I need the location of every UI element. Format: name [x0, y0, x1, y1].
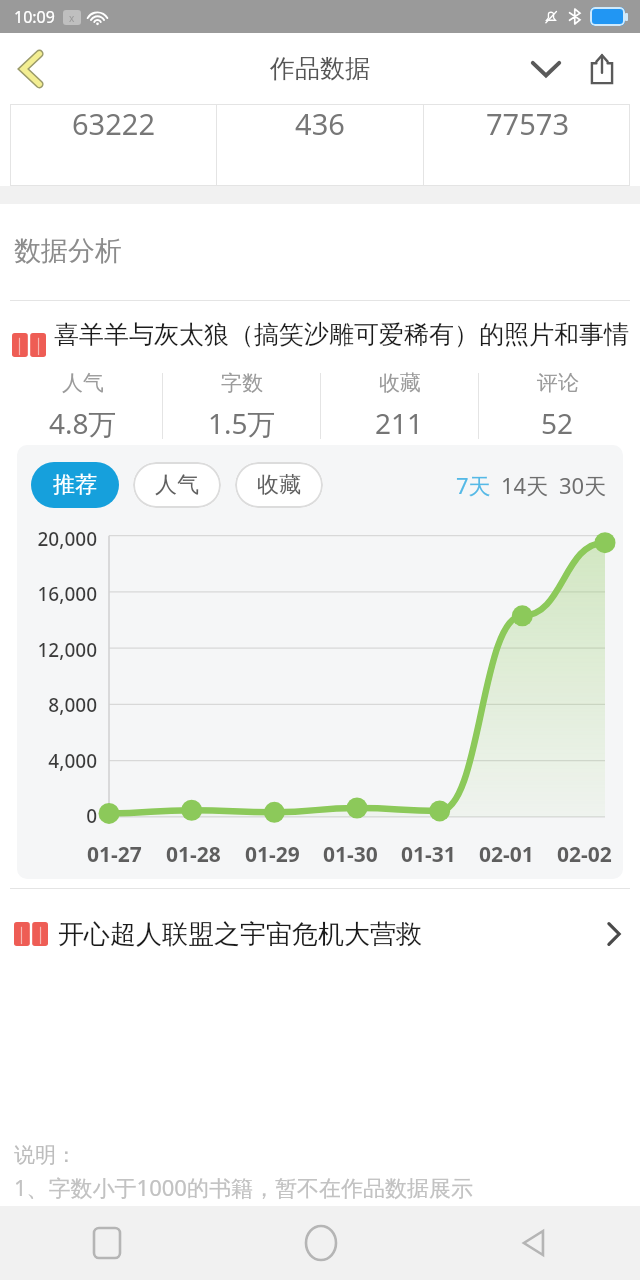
staticText: 436 — [295, 104, 345, 143]
button[interactable]: 63222 — [10, 104, 216, 186]
button[interactable]: Back — [0, 38, 62, 100]
staticText: 数据分析 — [14, 234, 122, 268]
staticText: 01-31 — [401, 840, 456, 869]
staticText: 8,000 — [48, 692, 97, 718]
staticText: 01-28 — [166, 840, 221, 869]
staticText: 63222 — [72, 104, 155, 143]
staticText: 推荐 — [53, 471, 97, 499]
button[interactable]: Home — [214, 1206, 427, 1280]
staticText: x — [69, 11, 75, 25]
staticText: 人气 — [62, 370, 104, 396]
button[interactable]: 77573 — [424, 104, 630, 186]
staticText: 4.8万 — [49, 404, 117, 442]
button[interactable]: 14天 — [499, 464, 551, 506]
staticText: 7天 — [456, 470, 491, 500]
staticText: 说明： — [14, 1142, 77, 1168]
staticText: 02-02 — [557, 840, 612, 869]
staticText: 14天 — [501, 470, 549, 500]
staticText: 01-29 — [245, 840, 300, 869]
staticText: 评论 — [537, 370, 579, 396]
staticText: 4,000 — [48, 748, 97, 774]
staticText: 作品数据 — [270, 53, 370, 84]
button[interactable]: 字数 — [163, 367, 320, 445]
button[interactable]: Share — [574, 41, 630, 97]
button[interactable]: 436 — [217, 104, 423, 186]
staticText: 211 — [375, 404, 424, 442]
staticText: 01-27 — [87, 840, 142, 869]
button[interactable]: 喜羊羊与灰太狼（搞笑沙雕可爱稀有）的照片和事情 — [0, 301, 640, 357]
staticText: 1、字数小于1000的书籍，暂不在作品数据展示 — [14, 1172, 473, 1202]
button[interactable]: 收藏 — [321, 367, 478, 445]
button[interactable]: 人气 — [133, 462, 221, 508]
staticText: 77573 — [486, 104, 569, 143]
staticText: 喜羊羊与灰太狼（搞笑沙雕可爱稀有）的照片和事情 — [54, 319, 629, 350]
staticText: 10:09 — [14, 6, 55, 28]
button[interactable]: Recent apps — [0, 1206, 214, 1280]
button[interactable]: 推荐 — [31, 462, 119, 508]
staticText: 12,000 — [37, 637, 97, 663]
staticText: 20,000 — [37, 526, 97, 552]
staticText: 收藏 — [379, 370, 421, 396]
staticText: 收藏 — [257, 471, 301, 499]
button[interactable]: 收藏 — [235, 462, 323, 508]
staticText: 人气 — [155, 471, 199, 499]
staticText: 52 — [541, 404, 574, 442]
staticText: 01-30 — [323, 840, 378, 869]
button[interactable]: Back — [427, 1206, 640, 1280]
button[interactable]: 30天 — [557, 464, 609, 506]
staticText: 1.5万 — [208, 404, 276, 442]
staticText: 0 — [86, 803, 97, 829]
button[interactable]: 评论 — [479, 367, 636, 445]
button[interactable]: 7天 — [454, 464, 493, 506]
staticText: 02-01 — [479, 840, 534, 869]
staticText: 16,000 — [37, 581, 97, 607]
staticText: 开心超人联盟之宇宙危机大营救 — [58, 918, 422, 951]
staticText: 30天 — [559, 470, 607, 500]
staticText: 字数 — [221, 370, 263, 396]
button[interactable]: 开心超人联盟之宇宙危机大营救 — [0, 889, 640, 979]
button[interactable]: Expand — [518, 41, 574, 97]
button[interactable]: 人气 — [4, 367, 162, 445]
